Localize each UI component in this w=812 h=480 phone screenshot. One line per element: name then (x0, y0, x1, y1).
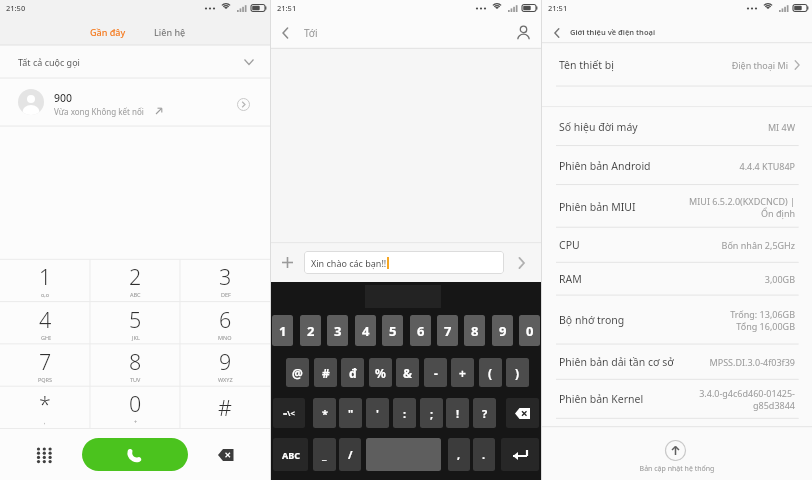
button[interactable]: 9 (492, 315, 513, 346)
button[interactable]: % (369, 358, 392, 387)
button[interactable]: 7 (0, 344, 90, 386)
button[interactable]: # (180, 386, 270, 428)
staticText: , (44, 418, 46, 425)
staticText: , (457, 447, 461, 462)
staticText: 7 (39, 347, 52, 376)
button[interactable] (663, 439, 687, 461)
button[interactable]: + (451, 358, 474, 387)
button[interactable]: ; (420, 398, 443, 428)
button[interactable]: 0 (519, 315, 540, 346)
button[interactable]: Liên hệ (140, 18, 200, 45)
button[interactable]: RAM (542, 262, 812, 295)
staticText: 2 (129, 262, 142, 291)
button[interactable] (518, 257, 525, 269)
button[interactable]: 5 (90, 302, 180, 344)
button[interactable]: ! (446, 398, 469, 428)
staticText: MNO (218, 334, 232, 341)
staticText: MI 4W (767, 121, 795, 133)
button[interactable]: 1 (272, 315, 293, 346)
button[interactable]: : (393, 398, 416, 428)
button[interactable]: " (339, 398, 362, 428)
button[interactable]: 2 (90, 259, 180, 301)
staticText: 5 (129, 305, 142, 334)
button[interactable]: * (313, 398, 336, 428)
staticText: & (403, 365, 413, 381)
button[interactable] (506, 398, 539, 428)
button[interactable]: / (339, 438, 361, 471)
button[interactable]: 3 (180, 259, 270, 301)
button[interactable] (279, 254, 296, 271)
button[interactable]: Số hiệu đời máy (542, 107, 812, 146)
button[interactable]: ) (506, 358, 529, 387)
button[interactable]: 6 (180, 302, 270, 344)
staticText: + (134, 418, 138, 425)
button[interactable]: 8 (90, 344, 180, 386)
button[interactable]: ABC (273, 438, 308, 471)
button[interactable]: Tất cả cuộc gọi (0, 45, 270, 78)
button[interactable]: ' (366, 398, 389, 428)
staticText: DEF (221, 291, 231, 298)
staticText: Tổng 16,00GB (736, 320, 795, 332)
button[interactable]: ? (473, 398, 496, 428)
staticText: ( (488, 365, 493, 381)
button[interactable]: 8 (464, 315, 485, 346)
button[interactable]: Phiên bản dải tần cơ sở (542, 344, 812, 379)
button[interactable] (282, 27, 289, 39)
button[interactable]: Tên thiết bị (542, 43, 812, 86)
staticText: 8 (129, 347, 142, 376)
staticText: CPU (559, 238, 580, 252)
button[interactable]: & (396, 358, 419, 387)
staticText: 900 (54, 91, 73, 105)
staticText: * (39, 389, 51, 418)
button[interactable]: , (448, 438, 470, 471)
button[interactable]: @ (286, 358, 309, 387)
button[interactable]: Phiên bản Kernel (542, 379, 812, 418)
button[interactable] (554, 28, 560, 38)
staticText: Trống: 13,06GB (730, 308, 795, 320)
staticText: 6 (417, 322, 425, 340)
button[interactable]: 900 (0, 78, 270, 126)
staticText: TUV (130, 376, 141, 383)
staticText: - (434, 365, 438, 381)
staticText: 9 (499, 322, 507, 340)
button[interactable]: . (473, 438, 495, 471)
button[interactable]: 9 (180, 344, 270, 386)
button[interactable]: 4 (0, 302, 90, 344)
button[interactable]: 3 (327, 315, 348, 346)
staticText: Gần đây (90, 26, 126, 38)
button[interactable]: CPU (542, 227, 812, 262)
button[interactable]: đ (341, 358, 364, 387)
staticText: g85d3844 (753, 399, 795, 411)
button[interactable]: Bộ nhớ trong (542, 295, 812, 344)
button[interactable]: 4 (355, 315, 376, 346)
button[interactable]: Xin chào các bạn!! (304, 251, 504, 274)
staticText: 6 (219, 305, 232, 334)
button[interactable]: ( (479, 358, 502, 387)
button[interactable]: 2 (300, 315, 321, 346)
button[interactable]: 6 (410, 315, 431, 346)
button[interactable] (513, 22, 533, 42)
staticText: 9 (219, 347, 232, 376)
button[interactable]: 7 (437, 315, 458, 346)
button[interactable]: Phiên bản MIUI (542, 185, 812, 228)
button[interactable]: Phiên bản Android (542, 146, 812, 185)
staticText: 5 (389, 322, 397, 340)
button[interactable]: * (0, 386, 90, 428)
button[interactable] (212, 446, 240, 464)
button[interactable] (501, 438, 539, 471)
button[interactable]: _ (313, 438, 336, 471)
button[interactable]: - (424, 358, 447, 387)
staticText: Ổn định (761, 207, 795, 219)
staticText: / (348, 447, 353, 462)
button[interactable]: # (314, 358, 337, 387)
button[interactable]: 1 (0, 259, 90, 301)
button[interactable]: =\< (273, 398, 305, 428)
staticText: 3.4.0-g4c6d460-01425- (699, 387, 795, 399)
button[interactable]: 0 (90, 386, 180, 428)
button[interactable]: Gần đây (60, 18, 156, 45)
button[interactable] (30, 444, 58, 466)
button[interactable] (82, 438, 188, 471)
button[interactable]: 5 (382, 315, 403, 346)
staticText: Phiên bản Android (559, 159, 651, 173)
